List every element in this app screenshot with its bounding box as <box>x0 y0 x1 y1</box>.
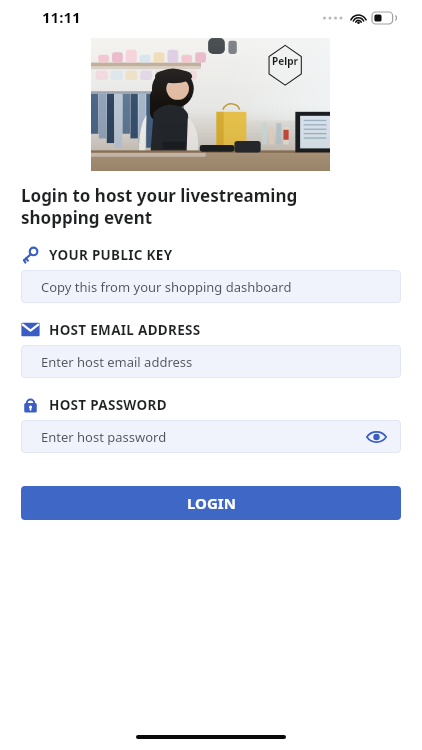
staticText: Enter host email address <box>41 353 193 371</box>
button[interactable]: Enter host password <box>21 420 401 453</box>
staticText: LOGIN <box>187 493 236 513</box>
staticText: Pelpr <box>272 54 298 68</box>
staticText: Login to host your livestreaming shoppin… <box>21 184 298 229</box>
staticText: HOST PASSWORD <box>49 396 167 414</box>
button[interactable]: Enter host email address <box>21 345 401 378</box>
staticText: YOUR PUBLIC KEY <box>49 246 173 264</box>
staticText: Copy this from your shopping dashboard <box>41 278 292 296</box>
button[interactable]: LOGIN <box>21 486 401 520</box>
staticText: Enter host password <box>41 428 167 446</box>
staticText: HOST EMAIL ADDRESS <box>49 321 201 339</box>
staticText: 11:11 <box>42 7 81 27</box>
button[interactable]: Copy this from your shopping dashboard <box>21 270 401 303</box>
button[interactable]: Show password <box>365 426 387 448</box>
